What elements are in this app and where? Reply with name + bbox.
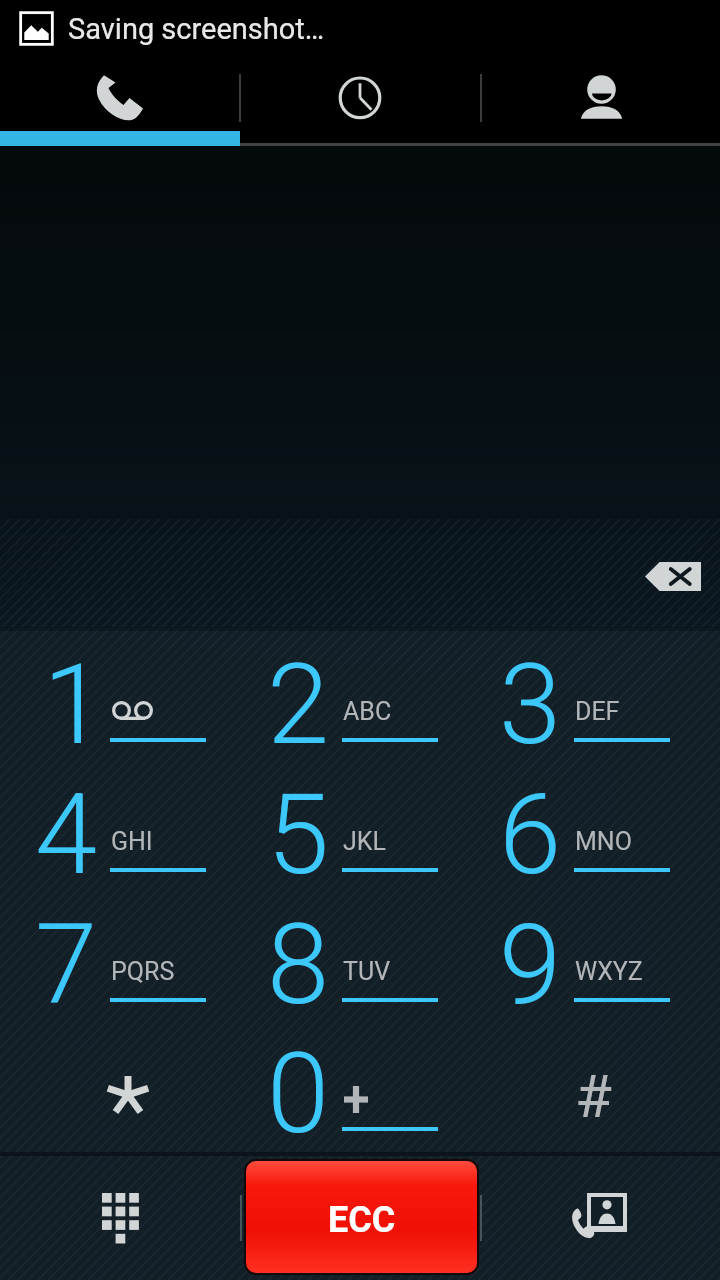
button[interactable]: Dialer: [0, 56, 240, 146]
button[interactable]: 3: [488, 639, 720, 769]
button[interactable]: 9: [488, 899, 720, 1029]
staticText: ECC: [328, 1199, 396, 1241]
button[interactable]: 7: [24, 899, 256, 1029]
staticText: WXYZ: [575, 957, 643, 986]
button[interactable]: 6: [488, 769, 720, 899]
button[interactable]: ECC: [244, 1159, 479, 1275]
button[interactable]: Dialpad: [62, 1159, 178, 1277]
staticText: 4: [35, 769, 98, 899]
staticText: #: [575, 1061, 612, 1131]
staticText: DEF: [575, 697, 620, 726]
button[interactable]: 2: [256, 639, 488, 769]
staticText: 8: [267, 899, 330, 1029]
button[interactable]: 4: [24, 769, 256, 899]
staticText: 5: [267, 769, 330, 899]
staticText: GHI: [111, 827, 153, 856]
staticText: 1: [43, 639, 106, 769]
staticText: 6: [499, 769, 562, 899]
button[interactable]: Add to contacts: [540, 1156, 660, 1276]
staticText: Saving screenshot…: [68, 12, 325, 46]
staticText: 9: [499, 899, 562, 1029]
staticText: ABC: [343, 697, 392, 726]
button[interactable]: Backspace: [625, 540, 720, 612]
staticText: JKL: [343, 827, 386, 856]
button[interactable]: Contacts: [480, 56, 720, 146]
button[interactable]: 0: [256, 1028, 488, 1158]
button[interactable]: 8: [256, 899, 488, 1029]
staticText: MNO: [575, 827, 632, 856]
staticText: 2: [267, 639, 330, 769]
button[interactable]: Star: [12, 1031, 244, 1161]
button[interactable]: 1: [24, 639, 256, 769]
staticText: 3: [499, 639, 562, 769]
button[interactable]: Screenshot notification: [12, 4, 60, 52]
staticText: 7: [35, 899, 98, 1029]
button[interactable]: 5: [256, 769, 488, 899]
staticText: PQRS: [111, 957, 175, 986]
staticText: TUV: [343, 957, 391, 986]
staticText: 0: [267, 1028, 330, 1158]
button[interactable]: Call log: [240, 56, 480, 146]
button[interactable]: #: [477, 1031, 709, 1161]
